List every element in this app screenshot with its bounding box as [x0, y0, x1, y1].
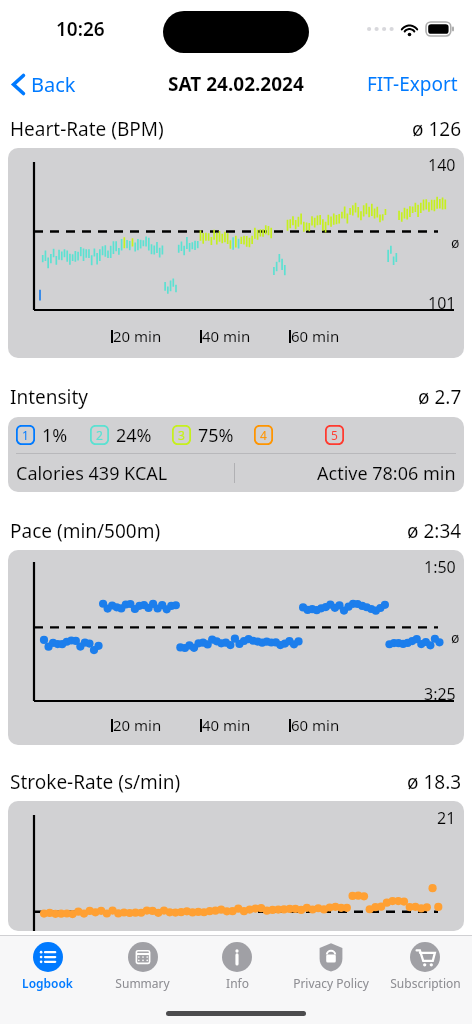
- staticText: ø 18.3: [407, 769, 462, 795]
- staticText: 75%: [198, 423, 234, 448]
- staticText: Active 78:06 min: [317, 461, 456, 486]
- staticText: 24%: [116, 423, 152, 448]
- staticText: ø 2:34: [407, 518, 462, 544]
- staticText: 40 min: [202, 326, 251, 346]
- button[interactable]: Logbook: [0, 936, 95, 1002]
- button[interactable]: 21: [8, 801, 464, 931]
- staticText: 40 min: [202, 715, 251, 735]
- staticText: SAT 24.02.2024: [168, 71, 304, 97]
- staticText: Info: [226, 975, 249, 991]
- staticText: 5: [331, 427, 338, 443]
- staticText: ø: [451, 233, 460, 252]
- staticText: ø 2.7: [418, 384, 462, 410]
- staticText: 21: [437, 807, 456, 829]
- staticText: 60 min: [291, 715, 340, 735]
- staticText: Stroke-Rate (s/min): [10, 769, 181, 795]
- button[interactable]: 1:50: [8, 550, 464, 745]
- staticText: Logbook: [22, 975, 73, 991]
- staticText: Back: [31, 71, 76, 98]
- staticText: Heart-Rate (BPM): [10, 116, 164, 142]
- staticText: 2: [96, 427, 103, 443]
- button[interactable]: 1: [8, 417, 464, 492]
- staticText: 1%: [42, 423, 68, 448]
- staticText: 10:26: [56, 16, 105, 42]
- staticText: ø 126: [412, 116, 462, 142]
- button[interactable]: FIT-Export: [363, 67, 462, 101]
- staticText: 101: [428, 292, 456, 314]
- staticText: 1:50: [424, 556, 456, 578]
- staticText: 1: [22, 427, 29, 443]
- staticText: Subscription: [390, 975, 461, 991]
- staticText: 140: [428, 154, 456, 176]
- staticText: Intensity: [10, 384, 89, 410]
- button[interactable]: Back: [8, 67, 80, 102]
- staticText: Calories 439 KCAL: [16, 461, 168, 486]
- staticText: 60 min: [291, 326, 340, 346]
- button[interactable]: 140: [8, 148, 464, 358]
- staticText: Pace (min/500m): [10, 518, 161, 544]
- staticText: 3:25: [424, 683, 456, 705]
- staticText: FIT-Export: [367, 71, 458, 97]
- button[interactable]: Privacy Policy: [284, 936, 378, 1002]
- button[interactable]: Info: [190, 936, 284, 1002]
- button[interactable]: Subscription: [378, 936, 472, 1002]
- staticText: Privacy Policy: [293, 975, 369, 991]
- staticText: 20 min: [113, 715, 162, 735]
- staticText: 3: [178, 427, 185, 443]
- staticText: 20 min: [113, 326, 162, 346]
- staticText: ø: [451, 628, 460, 647]
- button[interactable]: Summary: [95, 936, 190, 1002]
- staticText: Summary: [115, 975, 170, 991]
- staticText: 4: [260, 427, 267, 443]
